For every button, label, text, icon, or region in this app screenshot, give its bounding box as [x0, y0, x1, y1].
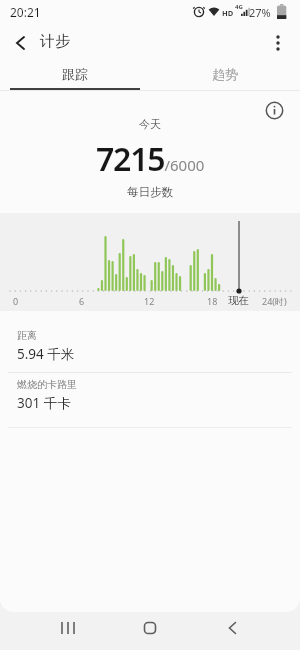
- staticText: 5.94 千米: [17, 345, 75, 363]
- staticText: 计步: [40, 32, 70, 51]
- staticText: HD: [222, 8, 234, 18]
- staticText: 4G: [235, 3, 243, 11]
- staticText: 每日步数: [127, 185, 173, 199]
- staticText: 20:21: [10, 4, 41, 20]
- staticText: 12: [144, 295, 155, 307]
- button[interactable]: 趋势: [150, 58, 300, 90]
- staticText: 27%: [249, 5, 271, 20]
- staticText: 距离: [17, 329, 37, 342]
- staticText: 趋势: [212, 66, 238, 82]
- staticText: 24(时): [262, 295, 287, 307]
- staticText: 0: [13, 295, 19, 307]
- staticText: 现在: [228, 294, 249, 307]
- staticText: 燃烧的卡路里: [17, 378, 77, 391]
- button[interactable]: [266, 24, 290, 58]
- button[interactable]: [27, 612, 109, 650]
- button[interactable]: [109, 612, 191, 650]
- staticText: 跟踪: [62, 66, 88, 82]
- button[interactable]: 跟踪: [0, 58, 150, 90]
- button[interactable]: [191, 612, 273, 650]
- button[interactable]: [0, 24, 34, 58]
- button[interactable]: [264, 100, 285, 121]
- staticText: 6: [79, 295, 85, 307]
- staticText: 7215/6000: [96, 137, 205, 181]
- staticText: 18: [207, 295, 218, 307]
- staticText: 301 千卡: [17, 394, 71, 412]
- staticText: 今天: [139, 117, 161, 131]
